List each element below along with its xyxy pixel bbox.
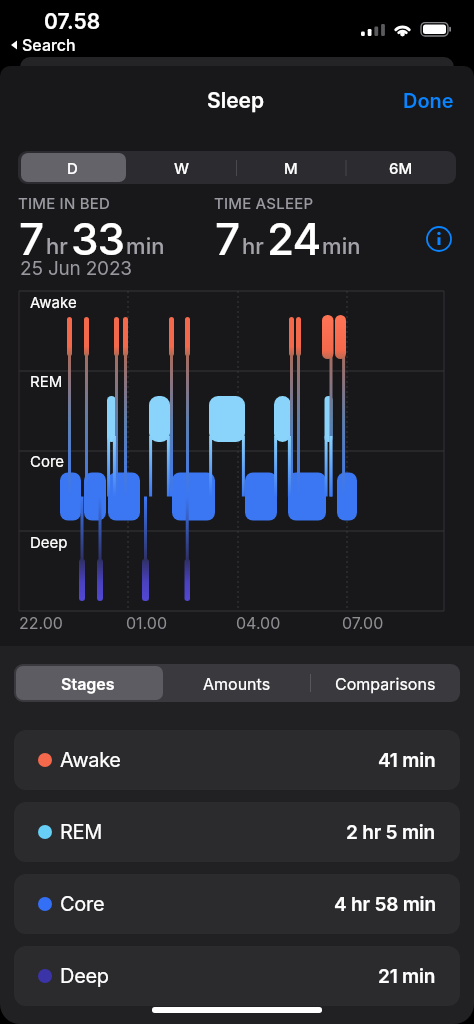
button[interactable]: Core (14, 874, 460, 934)
button[interactable]: W (127, 151, 236, 184)
staticText: Core (60, 892, 105, 916)
staticText: 25 Jun 2023 (20, 257, 132, 280)
button[interactable]: Done (395, 84, 465, 118)
staticText: Done (403, 89, 454, 113)
staticText: 6M (389, 159, 413, 177)
button[interactable]: Comparisons (311, 664, 460, 702)
button[interactable] (16, 666, 163, 700)
staticText: 21 min (378, 965, 436, 988)
staticText: Search (22, 35, 76, 54)
staticText: REM (60, 820, 103, 844)
staticText: TIME IN BED (18, 194, 110, 212)
staticText: Core (30, 452, 65, 470)
staticText: Sleep (207, 88, 265, 113)
staticText: Amounts (203, 674, 271, 693)
button[interactable]: M (236, 151, 346, 184)
staticText: Comparisons (335, 674, 436, 693)
button[interactable]: Search (8, 35, 76, 54)
button[interactable] (21, 153, 126, 182)
staticText: 24 (267, 212, 321, 265)
staticText: TIME ASLEEP (214, 194, 314, 212)
staticText: 7 (215, 212, 240, 265)
staticText: REM (30, 372, 63, 390)
staticText: Stages (61, 674, 115, 693)
staticText: hr (46, 233, 68, 260)
staticText: Awake (60, 748, 121, 772)
staticText: 7 (19, 212, 44, 265)
button[interactable]: Amounts (162, 664, 311, 702)
staticText: Deep (60, 964, 109, 988)
staticText: 04.00 (236, 613, 281, 632)
staticText: min (322, 233, 361, 260)
staticText: 01.00 (126, 613, 167, 632)
staticText: M (284, 159, 298, 177)
staticText: W (174, 159, 190, 177)
staticText: 07.58 (44, 9, 101, 34)
staticText: Awake (30, 293, 77, 311)
staticText: 33 (71, 212, 125, 265)
staticText: Deep (30, 533, 68, 551)
staticText: D (67, 159, 78, 177)
staticText: 4 hr 58 min (334, 893, 436, 916)
button[interactable]: Stages (14, 664, 162, 702)
button[interactable] (426, 226, 452, 252)
staticText: 2 hr 5 min (346, 821, 436, 844)
button[interactable]: Deep (14, 946, 460, 1006)
button[interactable]: Awake (14, 730, 460, 790)
button[interactable]: D (18, 151, 127, 184)
staticText: 22.00 (19, 613, 63, 632)
button[interactable]: 6M (346, 151, 456, 184)
staticText: 07.00 (342, 613, 384, 632)
staticText: hr (242, 233, 264, 260)
staticText: min (126, 233, 165, 260)
staticText: 41 min (378, 749, 436, 772)
button[interactable]: REM (14, 802, 460, 862)
